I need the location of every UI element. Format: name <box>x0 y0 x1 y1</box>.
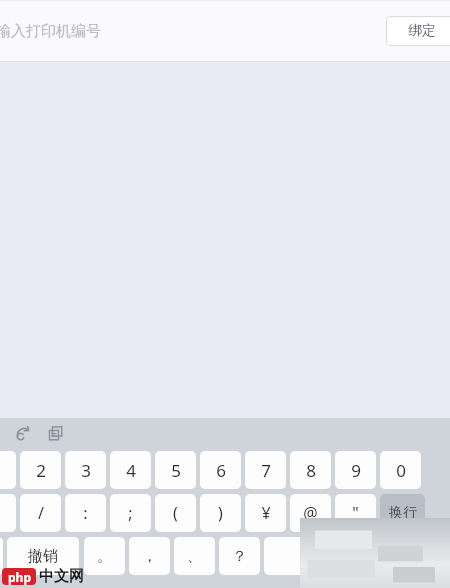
staticText: 9 <box>351 459 361 482</box>
button[interactable]: 撤销 <box>7 537 79 575</box>
button[interactable]: / <box>20 494 61 532</box>
button[interactable]: ， <box>129 537 170 575</box>
staticText: @ <box>303 502 318 524</box>
button[interactable]: 5 <box>155 451 196 489</box>
button[interactable]: ; <box>110 494 151 532</box>
button[interactable] <box>264 537 305 575</box>
staticText: ( <box>173 502 178 524</box>
button[interactable]: 8 <box>290 451 331 489</box>
button[interactable]: 输入打印机编号 <box>0 0 378 62</box>
staticText: 8 <box>306 459 316 482</box>
button[interactable]: 0 <box>380 451 421 489</box>
button[interactable]: : <box>65 494 106 532</box>
staticText: ; <box>128 502 133 524</box>
staticText: ) <box>218 502 223 524</box>
staticText: " <box>352 502 359 524</box>
button[interactable]: ( <box>155 494 196 532</box>
staticText: 撤销 <box>28 547 58 566</box>
staticText: ？ <box>232 547 247 566</box>
button[interactable]: 2 <box>20 451 61 489</box>
button[interactable]: ¥ <box>245 494 286 532</box>
staticText: 0 <box>396 459 406 482</box>
staticText: 3 <box>81 459 91 482</box>
button[interactable]: 、 <box>174 537 215 575</box>
staticText: 7 <box>261 459 271 482</box>
button[interactable]: 9 <box>335 451 376 489</box>
staticText: 换行 <box>389 504 417 522</box>
staticText: 5 <box>171 459 181 482</box>
staticText: 。 <box>97 547 112 566</box>
button[interactable]: 绑定 <box>386 16 450 46</box>
button[interactable]: Redo <box>10 420 36 446</box>
button[interactable]: 3 <box>65 451 106 489</box>
staticText: php <box>8 569 31 585</box>
button[interactable]: 换行 <box>380 494 425 532</box>
button[interactable]: Clipboard <box>42 420 68 446</box>
button[interactable]: = <box>0 537 3 575</box>
staticText: 输入打印机编号 <box>0 22 101 41</box>
button[interactable]: @ <box>290 494 331 532</box>
button[interactable]: 6 <box>200 451 241 489</box>
staticText: 、 <box>187 547 202 566</box>
button[interactable]: ) <box>200 494 241 532</box>
button[interactable]: " <box>335 494 376 532</box>
staticText: 绑定 <box>408 22 436 40</box>
staticText: / <box>38 502 44 524</box>
staticText: : <box>83 502 88 524</box>
staticText: ， <box>142 547 157 566</box>
button[interactable]: 4 <box>110 451 151 489</box>
staticText: 4 <box>126 459 136 482</box>
staticText: 中文网 <box>39 567 84 586</box>
staticText: 6 <box>216 459 226 482</box>
button[interactable]: 。 <box>84 537 125 575</box>
button[interactable]: 1 <box>0 451 16 489</box>
button[interactable]: 7 <box>245 451 286 489</box>
button[interactable]: - <box>0 494 16 532</box>
staticText: ¥ <box>261 502 271 524</box>
staticText: 2 <box>36 459 46 482</box>
button[interactable]: ？ <box>219 537 260 575</box>
